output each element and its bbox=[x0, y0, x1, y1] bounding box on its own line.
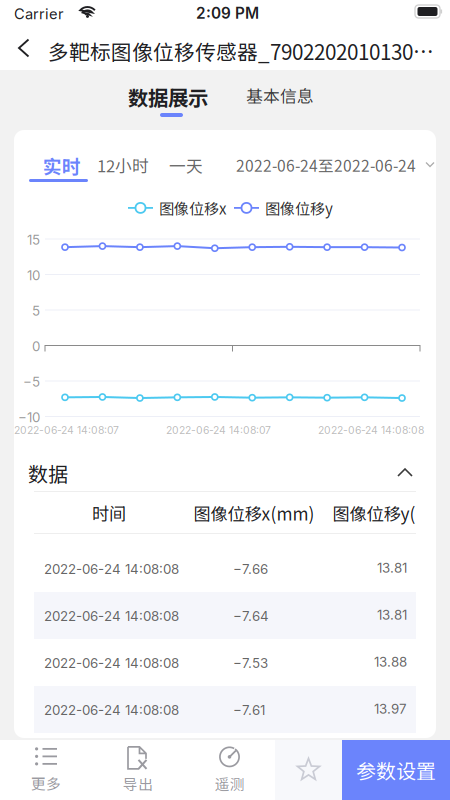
button[interactable]: 返回 bbox=[2, 26, 46, 70]
button[interactable]: 导出 bbox=[92, 740, 184, 800]
staticText: −10 bbox=[18, 409, 40, 425]
staticText: 一天 bbox=[169, 153, 203, 177]
staticText: −7.64 bbox=[233, 608, 269, 624]
staticText: −5 bbox=[23, 374, 40, 390]
staticText: 2022-06-24 14:08:07 bbox=[14, 424, 119, 437]
staticText: 12小时 bbox=[97, 153, 149, 177]
staticText: 2022-06-24 14:08:08 bbox=[44, 561, 179, 577]
button[interactable]: 数据 bbox=[28, 455, 412, 491]
staticText: 实时 bbox=[43, 152, 81, 179]
button[interactable]: 2022-06-24至2022-06-24 bbox=[236, 155, 434, 175]
button[interactable]: 12小时 bbox=[99, 155, 147, 175]
staticText: −7.53 bbox=[233, 655, 268, 671]
staticText: 0 bbox=[32, 338, 40, 354]
staticText: 数据展示 bbox=[128, 82, 208, 111]
staticText: 2022-06-24 14:08:08 bbox=[44, 608, 179, 624]
button[interactable]: 数据展示 bbox=[120, 80, 216, 124]
button[interactable]: 实时 bbox=[29, 150, 88, 188]
staticText: 参数设置 bbox=[356, 755, 436, 784]
staticText: 基本信息 bbox=[246, 83, 314, 107]
staticText: 图像位移y( bbox=[332, 500, 415, 526]
staticText: −7.61 bbox=[233, 702, 265, 718]
staticText: 2022-06-24至2022-06-24 bbox=[236, 154, 416, 176]
staticText: 时间 bbox=[92, 500, 126, 526]
button[interactable]: 参数设置 bbox=[342, 740, 450, 800]
staticText: 13.81 bbox=[377, 560, 407, 576]
button[interactable]: 更多 bbox=[0, 740, 92, 800]
staticText: 遥测 bbox=[214, 773, 244, 794]
staticText: 2022-06-24 14:08:08 bbox=[44, 702, 179, 718]
staticText: −7.66 bbox=[233, 561, 268, 577]
staticText: Carrier bbox=[14, 5, 64, 23]
staticText: 2:09 PM bbox=[196, 4, 259, 23]
staticText: 2022-06-24 14:08:08 bbox=[44, 655, 179, 671]
button[interactable]: 基本信息 bbox=[238, 80, 318, 124]
staticText: 13.88 bbox=[374, 654, 407, 670]
staticText: 5 bbox=[32, 303, 40, 319]
staticText: 15 bbox=[27, 232, 40, 248]
staticText: 13.81 bbox=[377, 607, 407, 623]
staticText: 13.97 bbox=[374, 701, 407, 717]
staticText: 多靶标图像位移传感器_7902202010130… bbox=[48, 36, 434, 66]
button[interactable]: 遥测 bbox=[184, 740, 275, 800]
staticText: 2022-06-24 14:08:08 bbox=[318, 424, 424, 437]
staticText: 数据 bbox=[28, 458, 68, 487]
staticText: 图像位移x bbox=[159, 197, 227, 219]
staticText: 图像位移y bbox=[265, 197, 333, 219]
staticText: 更多 bbox=[31, 772, 61, 794]
button[interactable]: 收藏 bbox=[275, 740, 342, 800]
staticText: 10 bbox=[27, 267, 40, 283]
button[interactable]: 一天 bbox=[168, 155, 204, 175]
staticText: 导出 bbox=[123, 773, 153, 794]
staticText: 2022-06-24 14:08:07 bbox=[166, 424, 271, 437]
staticText: 图像位移x(mm) bbox=[193, 500, 314, 526]
